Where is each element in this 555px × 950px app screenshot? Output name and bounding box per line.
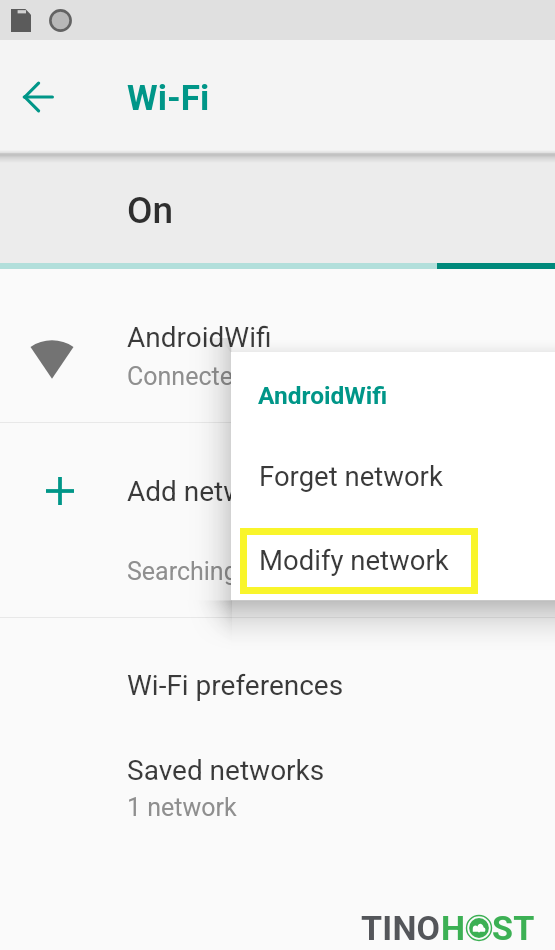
button[interactable]: Modify network <box>231 518 555 600</box>
staticText: H <box>441 908 466 948</box>
staticText: AndroidWifi <box>127 321 272 354</box>
other: Wi-Fi signal <box>28 337 76 385</box>
staticText: TINO <box>361 908 441 948</box>
staticText: Connected <box>127 362 248 391</box>
staticText: Searching… <box>127 557 255 586</box>
staticText: AndroidWifi <box>258 381 388 410</box>
button[interactable]: Wi-Fi signal <box>0 269 555 422</box>
staticText: ST <box>492 908 535 948</box>
button[interactable]: Back <box>10 69 66 125</box>
staticText: 1 network <box>127 793 237 822</box>
staticText: Forget network <box>259 460 443 492</box>
staticText: Saved networks <box>127 754 325 787</box>
staticText: On <box>127 189 174 232</box>
button[interactable]: On <box>0 153 555 263</box>
button[interactable]: Add network <box>0 423 555 543</box>
button[interactable]: Saved networks <box>0 710 555 830</box>
staticText: Wi-Fi preferences <box>127 669 344 702</box>
staticText: Add network <box>127 475 284 508</box>
staticText: Wi-Fi <box>127 78 210 119</box>
staticText: Modify network <box>259 544 449 576</box>
button[interactable]: Forget network <box>231 434 555 518</box>
button[interactable]: Wi-Fi preferences <box>0 618 555 710</box>
